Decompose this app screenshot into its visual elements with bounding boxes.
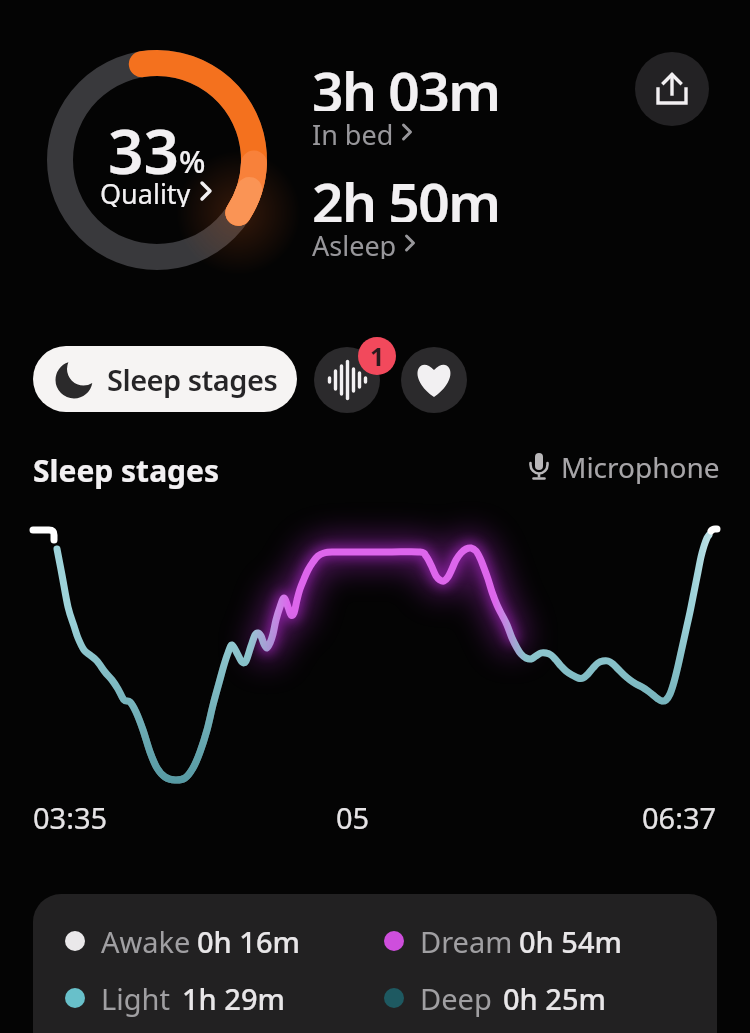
staticText: % bbox=[179, 140, 206, 182]
staticText: 1h 29m bbox=[182, 979, 285, 1018]
button[interactable]: In bed bbox=[312, 116, 415, 148]
staticText: 03:35 bbox=[33, 798, 108, 837]
button[interactable] bbox=[314, 347, 380, 413]
button[interactable]: Quality bbox=[57, 175, 257, 207]
staticText: Asleep bbox=[312, 227, 397, 259]
button[interactable]: Microphone bbox=[528, 448, 720, 484]
staticText: 05 bbox=[336, 798, 370, 837]
staticText: 33 bbox=[108, 108, 179, 192]
staticText: Microphone bbox=[561, 448, 720, 484]
staticText: Sleep stages bbox=[107, 360, 278, 399]
button[interactable] bbox=[635, 52, 709, 126]
staticText: Deep bbox=[420, 979, 492, 1018]
staticText: Awake bbox=[101, 922, 191, 961]
staticText: 3h 03m bbox=[312, 53, 500, 111]
staticText: Dream bbox=[420, 922, 513, 961]
button[interactable]: Asleep bbox=[312, 227, 418, 259]
button[interactable]: Sleep stages bbox=[33, 346, 297, 412]
staticText: 0h 54m bbox=[519, 922, 622, 961]
staticText: 06:37 bbox=[642, 798, 717, 837]
staticText: Quality bbox=[100, 175, 191, 207]
staticText: 2h 50m bbox=[312, 164, 500, 222]
button[interactable] bbox=[401, 347, 467, 413]
staticText: In bed bbox=[312, 116, 394, 148]
staticText: 1 bbox=[370, 339, 385, 373]
staticText: 0h 16m bbox=[197, 922, 300, 961]
staticText: Light bbox=[101, 979, 170, 1018]
staticText: 0h 25m bbox=[503, 979, 606, 1018]
staticText: Sleep stages bbox=[33, 450, 220, 491]
